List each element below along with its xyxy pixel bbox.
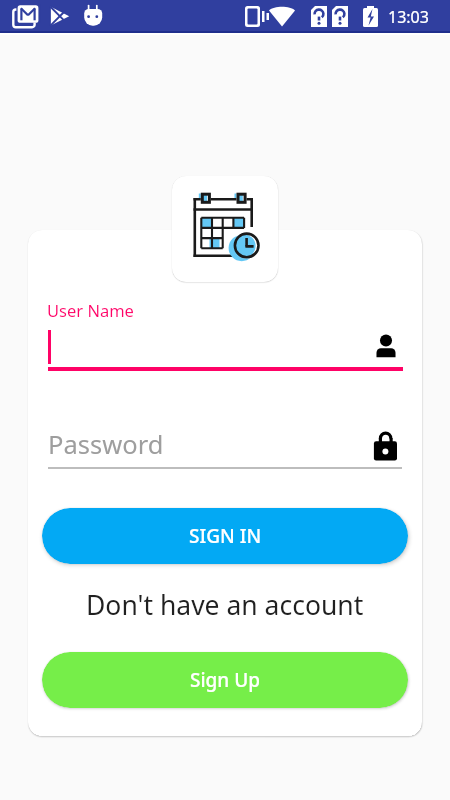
staticText: Sign Up [190,667,261,693]
staticText: User Name [47,299,134,321]
button[interactable]: Don't have an account [0,585,450,625]
staticText: Don't have an account [86,587,364,623]
button[interactable]: SIGN IN [42,508,408,564]
staticText: Password [48,427,164,462]
staticText: 13:03 [388,6,429,28]
button[interactable]: Sign Up [42,652,408,708]
other: Password [372,429,399,456]
staticText: SIGN IN [189,523,262,549]
other: User [372,332,400,360]
